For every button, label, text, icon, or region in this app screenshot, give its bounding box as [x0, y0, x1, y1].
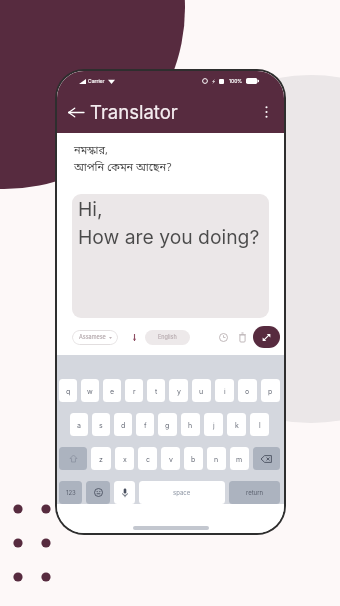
staticText: l: [259, 421, 261, 429]
button[interactable]: g: [158, 413, 177, 436]
staticText: i: [224, 387, 226, 395]
button[interactable]: s: [92, 413, 110, 436]
button[interactable]: j: [204, 413, 223, 436]
button[interactable]: m: [230, 447, 249, 470]
staticText: s: [99, 421, 103, 429]
button[interactable]: Emoji: [86, 481, 110, 504]
staticText: c: [146, 455, 150, 463]
button[interactable]: return: [229, 481, 280, 504]
button[interactable]: Voice input: [114, 481, 135, 504]
button[interactable]: v: [161, 447, 180, 470]
staticText: e: [110, 387, 115, 395]
button[interactable]: Delete: [234, 329, 250, 345]
staticText: t: [155, 387, 158, 395]
button[interactable]: d: [114, 413, 132, 436]
staticText: h: [188, 421, 193, 429]
button[interactable]: n: [207, 447, 226, 470]
button[interactable]: 123: [59, 481, 82, 504]
staticText: f: [144, 421, 147, 429]
button[interactable]: i: [215, 379, 234, 402]
button[interactable]: Swap languages: [128, 331, 140, 343]
staticText: আপনি কেমন আছেন?: [74, 161, 172, 176]
button[interactable]: History: [215, 329, 231, 345]
staticText: r: [133, 387, 136, 395]
staticText: Assamese: [79, 334, 106, 341]
button[interactable]: x: [115, 447, 134, 470]
staticText: p: [268, 387, 273, 395]
button[interactable]: Shift: [59, 447, 87, 470]
staticText: a: [77, 421, 81, 429]
staticText: z: [99, 455, 103, 463]
button[interactable]: Assamese: [72, 330, 118, 345]
staticText: 100%: [229, 78, 243, 84]
button[interactable]: Expand: [253, 326, 280, 348]
button[interactable]: o: [238, 379, 257, 402]
staticText: x: [123, 455, 127, 463]
button[interactable]: z: [91, 447, 111, 470]
staticText: n: [214, 455, 219, 463]
staticText: How are you doing?: [78, 225, 260, 248]
button[interactable]: k: [227, 413, 246, 436]
button[interactable]: Hi,: [72, 194, 269, 318]
button[interactable]: Backspace: [253, 447, 280, 470]
button[interactable]: y: [169, 379, 188, 402]
staticText: w: [87, 387, 93, 395]
button[interactable]: h: [181, 413, 200, 436]
button[interactable]: u: [192, 379, 211, 402]
button[interactable]: c: [138, 447, 157, 470]
staticText: g: [165, 421, 170, 429]
button[interactable]: English: [145, 330, 190, 345]
staticText: m: [236, 455, 243, 463]
staticText: নমস্কার,: [74, 144, 108, 159]
staticText: k: [235, 421, 239, 429]
button[interactable]: w: [81, 379, 99, 402]
button[interactable]: f: [136, 413, 154, 436]
button[interactable]: space: [139, 481, 225, 504]
staticText: Translator: [90, 101, 178, 123]
staticText: d: [121, 421, 126, 429]
button[interactable]: l: [250, 413, 269, 436]
button[interactable]: t: [147, 379, 165, 402]
staticText: Carrier: [88, 78, 105, 84]
button[interactable]: a: [70, 413, 88, 436]
staticText: b: [191, 455, 196, 463]
staticText: v: [169, 455, 173, 463]
button[interactable]: Back: [66, 102, 86, 122]
staticText: space: [173, 489, 191, 496]
button[interactable]: p: [261, 379, 280, 402]
staticText: y: [177, 387, 181, 395]
staticText: 123: [66, 489, 76, 496]
staticText: o: [245, 387, 250, 395]
staticText: q: [66, 387, 71, 395]
button[interactable]: e: [103, 379, 121, 402]
staticText: return: [246, 489, 264, 496]
staticText: j: [213, 421, 215, 429]
button[interactable]: b: [184, 447, 203, 470]
button[interactable]: r: [125, 379, 143, 402]
staticText: English: [158, 334, 177, 341]
staticText: Hi,: [78, 197, 103, 220]
staticText: u: [199, 387, 204, 395]
button[interactable]: More options: [257, 103, 275, 121]
button[interactable]: q: [59, 379, 77, 402]
